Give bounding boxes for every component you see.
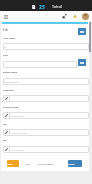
- button[interactable]: View: [25, 160, 33, 167]
- button[interactable]: Continue editing: [38, 160, 55, 167]
- staticText: Tahsil: [52, 4, 63, 9]
- staticText: Pop name here: [11, 149, 24, 151]
- staticText: B: [32, 3, 35, 10]
- button[interactable]: Input name here: [3, 78, 89, 85]
- button[interactable]: Menu: [1, 12, 10, 21]
- staticText: English Name: [3, 71, 17, 74]
- staticText: Nickname: [3, 89, 13, 92]
- button[interactable]: Ali: [3, 43, 89, 50]
- staticText: Farsi: [3, 54, 8, 57]
- staticText: Ali: [4, 46, 6, 48]
- staticText: Input name here: [4, 81, 18, 83]
- button[interactable]: [3, 61, 77, 68]
- button[interactable]: Add attachment: [78, 28, 86, 35]
- button[interactable]: Browse: [78, 59, 86, 66]
- staticText: Edit: [3, 28, 8, 32]
- staticText: PoP: [3, 139, 7, 142]
- button[interactable]: Cell phone number: [3, 129, 89, 136]
- button[interactable]: Profile: [81, 12, 89, 20]
- button[interactable]: Submit: [68, 160, 82, 167]
- staticText: View: [25, 163, 29, 166]
- staticText: Continue editing: [38, 163, 53, 166]
- staticText: Passport name: [11, 115, 24, 117]
- button[interactable]: Notifications: [71, 12, 79, 20]
- button[interactable]: Reject: [7, 160, 19, 167]
- staticText: Cell: [3, 123, 7, 126]
- button[interactable]: Pop name here: [3, 146, 89, 153]
- staticText: Local Name: [3, 37, 15, 40]
- button[interactable]: Passport name: [3, 112, 89, 119]
- staticText: Cell phone number: [11, 132, 27, 134]
- staticText: Passport Name: [3, 106, 19, 109]
- button[interactable]: [3, 95, 89, 102]
- staticText: 25: [39, 3, 45, 10]
- button[interactable]: Share: [60, 12, 68, 20]
- staticText: Reject: [7, 163, 13, 166]
- staticText: Submit: [68, 163, 74, 166]
